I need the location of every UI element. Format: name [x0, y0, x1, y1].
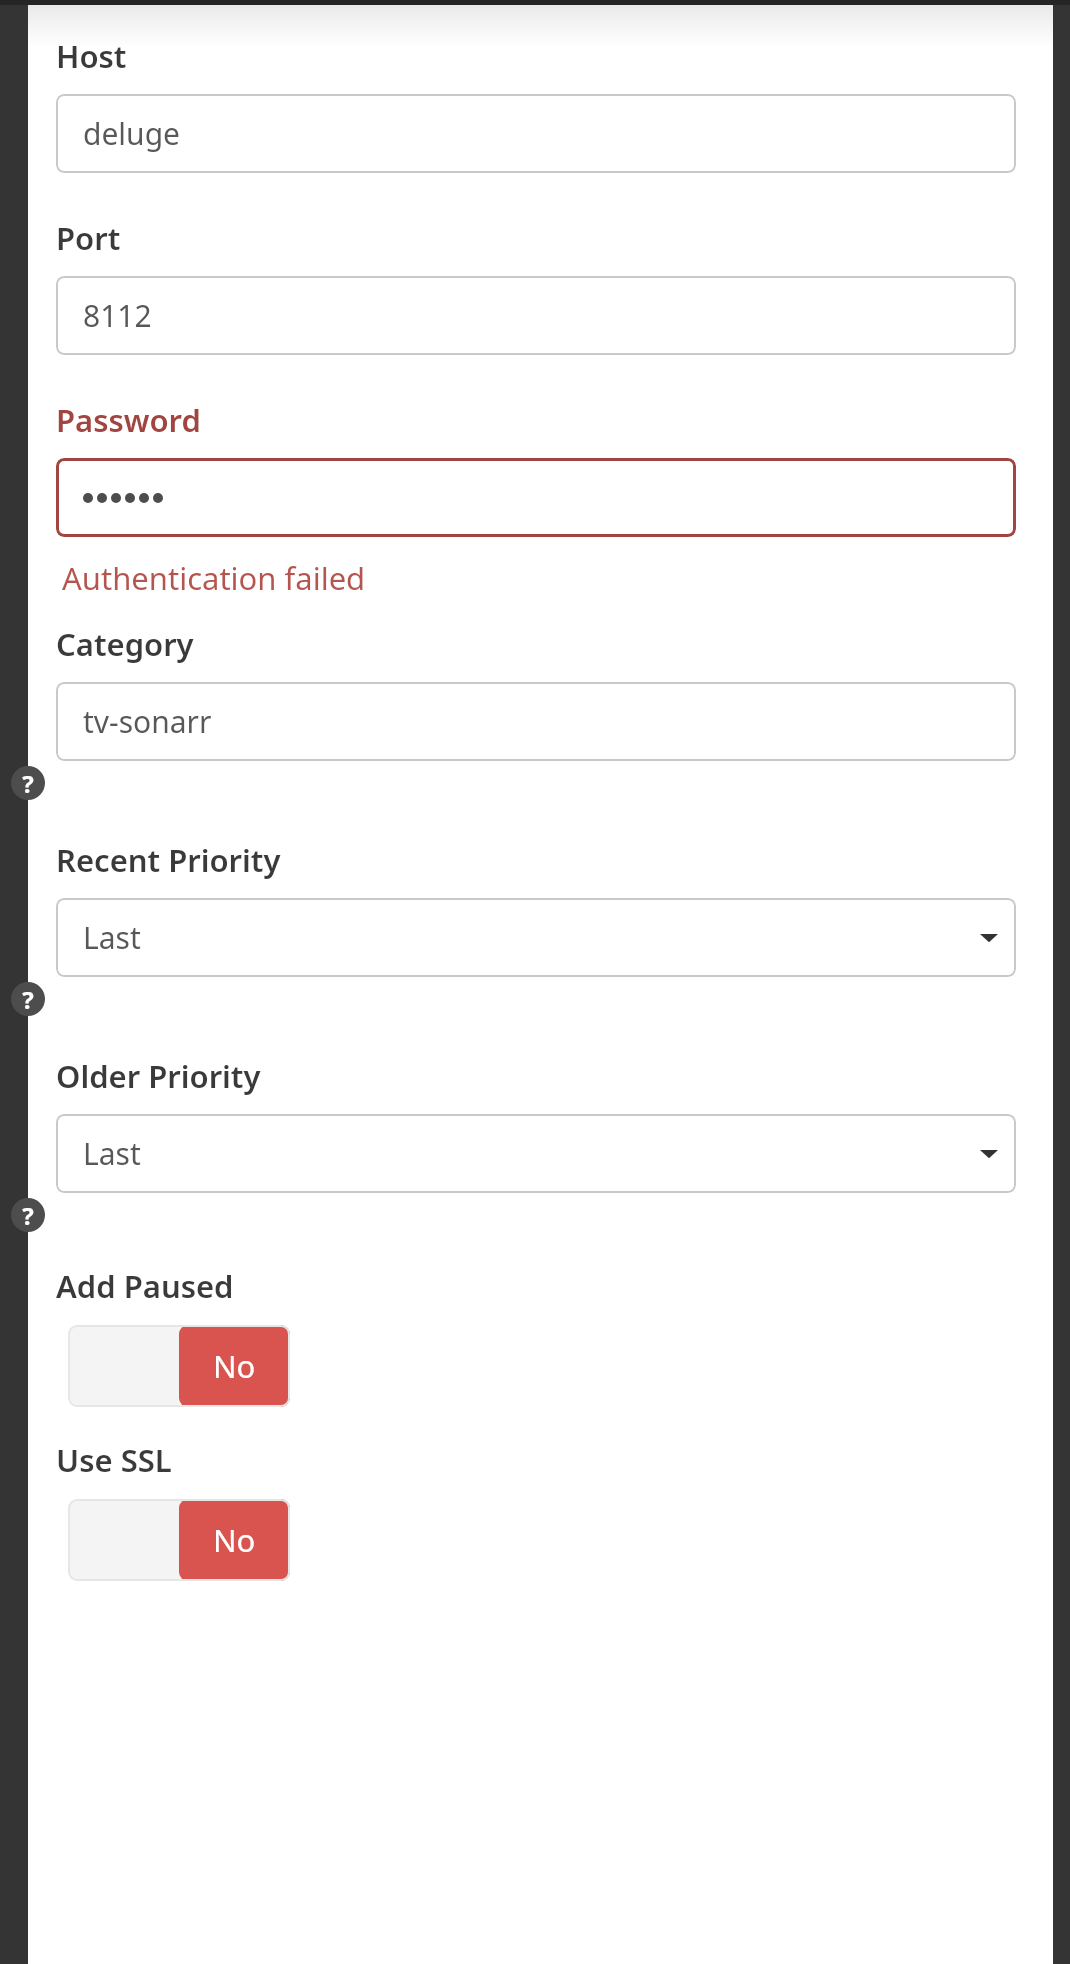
staticText: Add Paused — [56, 1265, 234, 1307]
staticText: Category — [56, 623, 194, 665]
staticText: Password — [56, 399, 201, 441]
staticText: Host — [56, 35, 127, 77]
staticText: No — [213, 1519, 256, 1561]
staticText: ? — [22, 983, 34, 1016]
button[interactable]: Help — [11, 1198, 45, 1232]
staticText: ? — [22, 1199, 34, 1232]
button[interactable]: Add Paused — [68, 1325, 290, 1407]
button[interactable]: Older Priority — [56, 1114, 1016, 1193]
button[interactable]: Help — [11, 982, 45, 1016]
staticText: Last — [83, 1133, 141, 1174]
staticText: 8112 — [83, 295, 152, 336]
staticText: Older Priority — [56, 1055, 261, 1097]
button[interactable]: Use SSL — [68, 1499, 290, 1581]
staticText: ? — [22, 767, 34, 800]
staticText: Recent Priority — [56, 839, 281, 881]
staticText: Authentication failed — [62, 557, 366, 599]
staticText: Port — [56, 217, 121, 259]
button[interactable]: Host — [56, 94, 1016, 173]
button[interactable]: Recent Priority — [56, 898, 1016, 977]
button[interactable]: Password — [56, 458, 1016, 537]
button[interactable]: Help — [11, 766, 45, 800]
button[interactable]: Category — [56, 682, 1016, 761]
button[interactable]: Port — [56, 276, 1016, 355]
staticText: No — [213, 1345, 256, 1387]
staticText: tv-sonarr — [83, 701, 212, 742]
staticText: deluge — [83, 113, 181, 154]
staticText: Use SSL — [56, 1439, 172, 1481]
staticText: Last — [83, 917, 141, 958]
